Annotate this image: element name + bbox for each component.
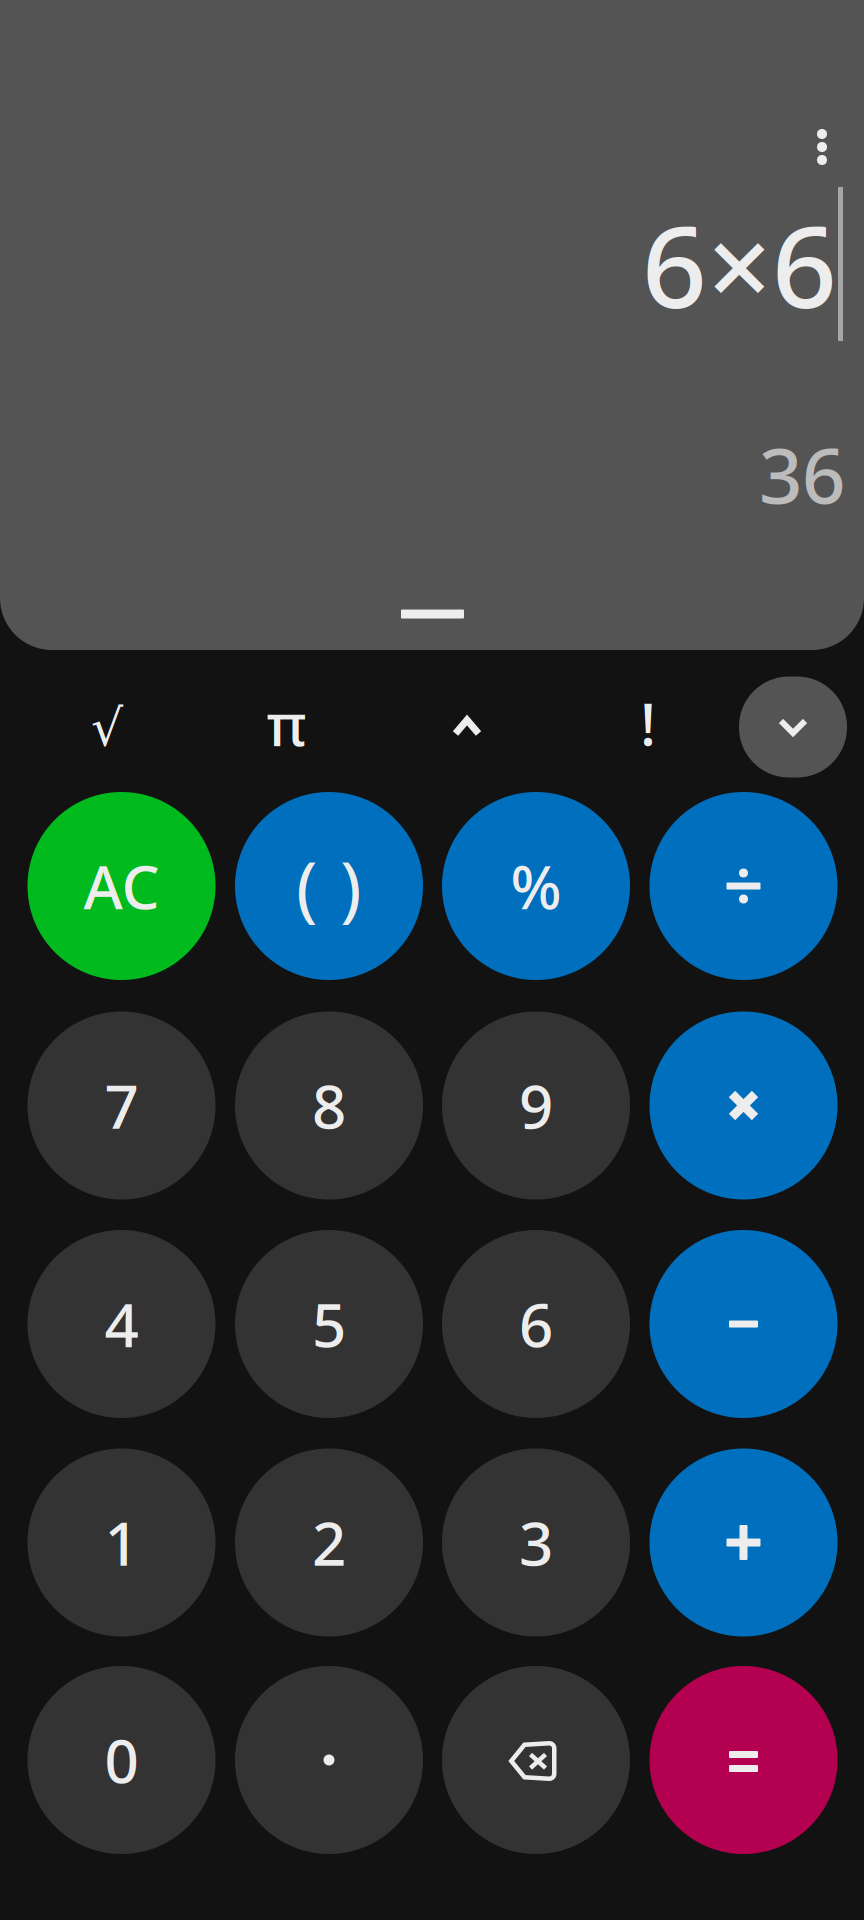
button[interactable]: Plus <box>649 1448 837 1636</box>
staticText: % <box>510 846 561 926</box>
staticText: 5 <box>312 1284 346 1364</box>
button[interactable]: 3 <box>442 1448 630 1636</box>
button[interactable]: 6 <box>442 1230 630 1418</box>
staticText: 6 <box>519 1284 553 1364</box>
button[interactable]: 9 <box>442 1011 630 1199</box>
staticText: 9 <box>519 1066 553 1145</box>
button[interactable]: Minus <box>649 1230 837 1418</box>
staticText: √ <box>91 699 123 757</box>
button[interactable]: Hide functions <box>739 676 847 777</box>
button[interactable]: π <box>206 668 366 778</box>
staticText: π <box>266 684 306 762</box>
button[interactable]: Delete <box>442 1666 630 1854</box>
button[interactable]: Exponent <box>387 672 547 782</box>
button[interactable]: AC <box>27 792 215 980</box>
button[interactable]: ! <box>568 668 728 778</box>
staticText: 36 <box>759 423 845 524</box>
button[interactable]: 7 <box>27 1011 215 1199</box>
staticText: 7 <box>104 1066 138 1145</box>
button[interactable]: Equals <box>649 1666 837 1854</box>
button[interactable]: ( <box>235 792 423 980</box>
button[interactable]: 8 <box>235 1011 423 1199</box>
button[interactable]: 2 <box>235 1448 423 1636</box>
button[interactable]: 5 <box>235 1230 423 1418</box>
button[interactable]: 0 <box>27 1666 215 1854</box>
button[interactable]: Divide <box>649 792 837 980</box>
button[interactable]: 4 <box>27 1230 215 1418</box>
staticText: 1 <box>104 1503 138 1582</box>
button[interactable]: More options <box>790 115 854 179</box>
staticText: 2 <box>312 1503 346 1582</box>
button[interactable]: Multiply <box>649 1011 837 1199</box>
button[interactable]: 1 <box>27 1448 215 1636</box>
staticText: 6×6 <box>642 189 837 339</box>
button[interactable]: Decimal point <box>235 1666 423 1854</box>
staticText: ! <box>640 684 656 762</box>
staticText: AC <box>83 846 159 926</box>
staticText: 3 <box>519 1503 553 1582</box>
button[interactable]: √ <box>27 673 187 783</box>
staticText: ( <box>296 838 318 934</box>
staticText: 4 <box>104 1284 138 1364</box>
staticText: 0 <box>104 1720 138 1800</box>
staticText: ) <box>340 838 362 934</box>
staticText: 8 <box>312 1066 346 1145</box>
button[interactable]: % <box>442 792 630 980</box>
